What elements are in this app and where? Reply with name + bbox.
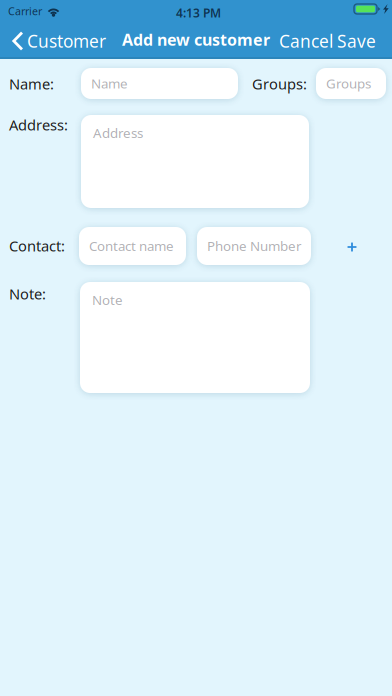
staticText: Add new customer [122,29,270,50]
button[interactable]: Cancel [273,24,339,58]
staticText: Contact name [89,237,174,255]
staticText: Note [92,291,123,309]
button[interactable]: Phone Number [197,227,311,265]
button[interactable]: Note [80,282,310,393]
staticText: Customer [27,29,106,52]
staticText: Cancel [279,29,333,52]
button[interactable]: Groups [316,68,386,99]
staticText: Contact: [9,236,65,255]
button[interactable]: Address [81,115,309,208]
staticText: Carrier [8,4,42,18]
staticText: Groups [326,74,371,92]
button[interactable]: Customer [4,24,114,58]
staticText: Phone Number [207,237,302,255]
staticText: Groups: [252,74,307,93]
staticText: Address: [9,115,68,134]
staticText: Address [93,124,143,142]
staticText: 4:13 PM [176,5,221,21]
button[interactable]: Name [81,68,238,99]
staticText: Name: [9,74,54,93]
button[interactable]: Add contact [337,232,367,262]
button[interactable]: Save [331,24,382,58]
staticText: Name [91,74,128,92]
staticText: Save [337,29,376,52]
button[interactable]: Contact name [79,227,186,265]
staticText: Note: [9,284,46,303]
